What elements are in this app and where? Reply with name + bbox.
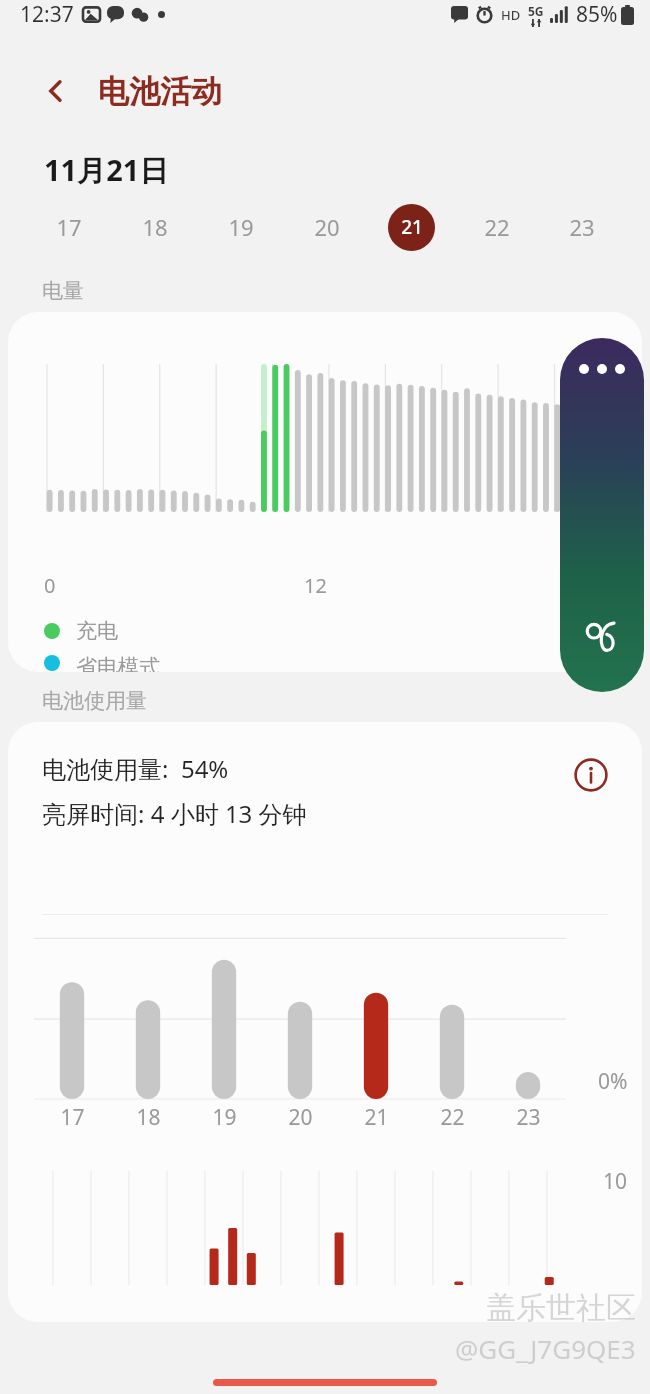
staticText: @GG_J7G9QE3 (455, 1331, 636, 1366)
staticText: 电量 (42, 278, 84, 304)
button[interactable]: 22 (454, 190, 539, 264)
staticText: 22 (484, 212, 510, 242)
button[interactable]: 21 (369, 190, 454, 264)
staticText: 21 (401, 214, 423, 240)
staticText: 电池使用量 (42, 688, 147, 714)
staticText: 21 (364, 1103, 389, 1132)
staticText: 20 (314, 212, 340, 242)
staticText: 19 (228, 212, 254, 242)
staticText: 12 (304, 572, 327, 599)
staticText: 19 (212, 1103, 237, 1132)
staticText: 电池活动 (98, 72, 222, 111)
button[interactable]: 18 (112, 190, 198, 264)
staticText: 17 (56, 212, 82, 242)
button[interactable]: 23 (539, 190, 624, 264)
staticText: 10 (603, 1167, 628, 1196)
staticText: 18 (142, 212, 168, 242)
staticText: 亮屏时间: 4 小时 13 分钟 (42, 797, 307, 830)
button[interactable]: 17 (26, 190, 112, 264)
staticText: 18 (136, 1103, 161, 1132)
staticText: 充电 (76, 618, 118, 644)
staticText: 23 (569, 212, 595, 242)
staticText: 22 (440, 1103, 465, 1132)
staticText: 盖乐世社区 (486, 1289, 636, 1327)
staticText: 0 (44, 572, 56, 599)
staticText: 17 (60, 1103, 85, 1132)
button[interactable]: 19 (198, 190, 284, 264)
button[interactable]: Edge panel (560, 338, 644, 692)
staticText: HD (501, 6, 521, 24)
staticText: 5G (528, 3, 544, 19)
button[interactable]: Information (568, 752, 614, 798)
staticText: 省电模式 (76, 654, 160, 672)
button[interactable]: 0 (8, 312, 642, 672)
staticText: 20 (288, 1103, 313, 1132)
staticText: 23 (516, 1103, 541, 1132)
staticText: 85% (576, 0, 618, 29)
staticText: 0% (598, 1067, 628, 1096)
staticText: 电池使用量: 54% (42, 752, 229, 785)
staticText: 11月21日 (44, 150, 169, 190)
staticText: 12:37 (20, 0, 74, 29)
button[interactable]: 20 (284, 190, 369, 264)
button[interactable]: Back (34, 69, 78, 113)
